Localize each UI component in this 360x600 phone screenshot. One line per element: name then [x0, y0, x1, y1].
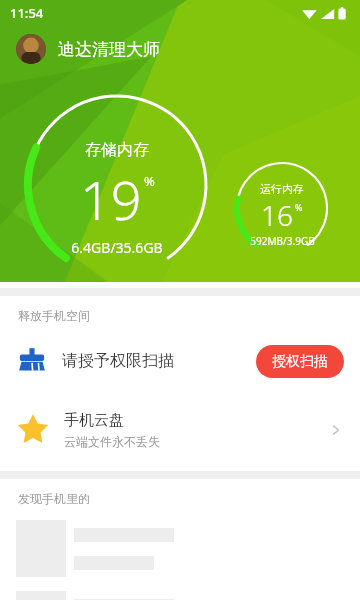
staticText: 6.4GB/35.6GB: [71, 238, 163, 257]
staticText: 16: [261, 196, 293, 234]
staticText: 存储内存: [85, 140, 149, 160]
staticText: 发现手机里的: [18, 491, 90, 506]
staticText: 11:54: [10, 4, 44, 22]
button[interactable]: Cloud drive: [0, 403, 360, 457]
staticText: 手机云盘: [64, 411, 124, 430]
staticText: 请授予权限扫描: [62, 351, 174, 371]
staticText: 授权扫描: [272, 353, 328, 371]
button[interactable]: 迪达清理大师: [0, 32, 360, 66]
other: Cloud drive: [16, 413, 50, 447]
button[interactable]: 授权扫描: [256, 345, 344, 378]
staticText: 19: [80, 162, 142, 236]
button[interactable]: Clean: [0, 337, 360, 385]
staticText: 释放手机空间: [18, 308, 90, 323]
staticText: 云端文件永不丢失: [64, 434, 160, 449]
button[interactable]: 存储内存: [24, 92, 210, 278]
staticText: %: [144, 172, 155, 190]
staticText: 迪达清理大师: [58, 39, 160, 60]
staticText: 592MB/3.9GB: [250, 234, 315, 248]
button[interactable]: 运行内存: [234, 160, 330, 256]
staticText: %: [295, 201, 303, 213]
other: Clean: [16, 345, 48, 377]
staticText: 运行内存: [260, 182, 304, 196]
